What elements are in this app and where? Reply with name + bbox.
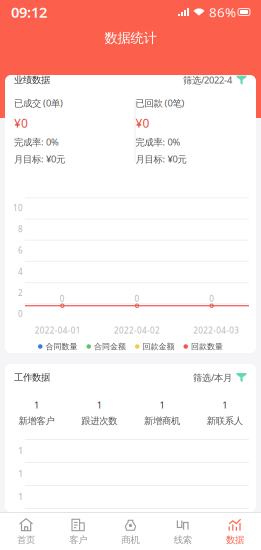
staticText: 工作数据 (14, 372, 50, 383)
staticText: 月目标: ¥0元 (14, 153, 65, 165)
staticText: ¥0 (14, 115, 28, 131)
button[interactable]: 商机 (104, 513, 157, 550)
staticText: 1 (159, 399, 164, 411)
staticText: 数据统计 (104, 30, 156, 46)
staticText: 商机 (121, 534, 139, 546)
staticText: 86% (209, 3, 236, 21)
staticText: 新增商机 (144, 415, 180, 427)
staticText: 回款金额 (142, 342, 174, 351)
staticText: 回款数量 (191, 342, 223, 351)
button[interactable]: 客户 (52, 513, 104, 550)
button[interactable]: 数据 (209, 513, 261, 550)
staticText: 10 (13, 203, 23, 213)
staticText: 已成交 (0单) (14, 97, 63, 109)
staticText: 合同金额 (94, 342, 126, 351)
button[interactable]: 线索 (157, 513, 209, 550)
staticText: 筛选/2022-4 (183, 74, 232, 86)
staticText: 跟进次数 (81, 415, 117, 427)
staticText: 0 (18, 309, 23, 319)
staticText: 2022-04-02 (114, 325, 160, 336)
staticText: 1 (222, 399, 227, 411)
staticText: 完成率: 0% (135, 136, 180, 148)
staticText: 4 (18, 266, 23, 277)
staticText: 2022-04-03 (193, 325, 239, 336)
staticText: 8 (18, 224, 23, 234)
staticText: 1 (18, 513, 23, 526)
staticText: 月目标: ¥0元 (135, 153, 186, 165)
staticText: 新联系人 (207, 415, 243, 427)
button[interactable]: 首页 (0, 513, 52, 550)
staticText: 0 (134, 293, 139, 304)
button[interactable]: 筛选/2022-4 (183, 71, 247, 89)
staticText: 0 (60, 293, 65, 304)
staticText: 1 (18, 490, 23, 503)
staticText: 业绩数据 (14, 74, 50, 86)
staticText: 1 (34, 399, 39, 411)
staticText: 线索 (174, 534, 192, 546)
staticText: ¥0 (135, 115, 149, 131)
staticText: 1 (97, 399, 102, 411)
staticText: 1 (18, 444, 23, 457)
staticText: 已回款 (0笔) (135, 97, 184, 109)
staticText: 新增客户 (18, 415, 54, 427)
staticText: 1 (18, 467, 23, 480)
staticText: 2 (18, 287, 23, 298)
staticText: 6 (18, 245, 23, 256)
staticText: 数据 (226, 534, 244, 546)
staticText: 完成率: 0% (14, 136, 59, 148)
staticText: 0 (209, 293, 214, 304)
staticText: 09:12 (11, 2, 47, 22)
staticText: 客户 (69, 534, 87, 546)
staticText: 合同数量 (45, 342, 77, 351)
staticText: 2022-04-01 (35, 325, 81, 336)
staticText: 筛选/本月 (193, 371, 232, 384)
staticText: 首页 (17, 534, 35, 546)
button[interactable]: 筛选/本月 (193, 368, 247, 387)
